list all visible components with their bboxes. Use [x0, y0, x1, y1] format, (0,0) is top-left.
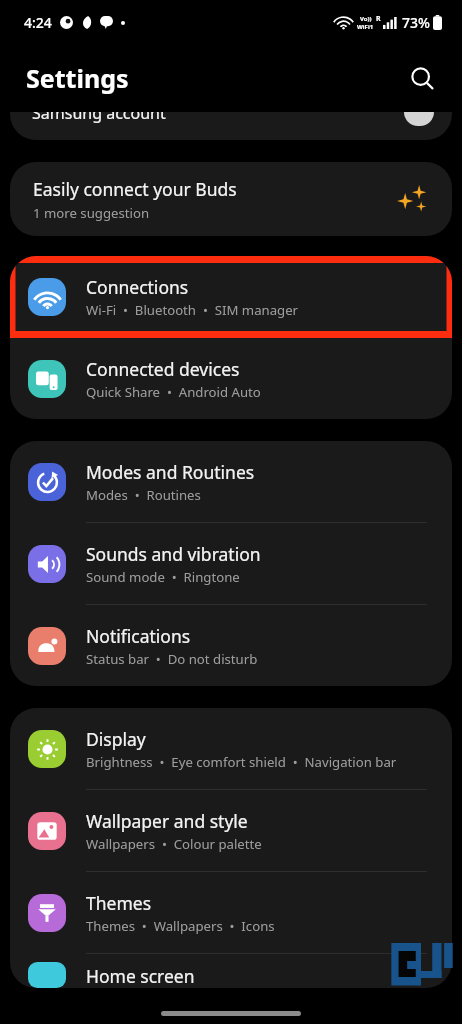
staticText: 1 more suggestion: [33, 204, 150, 222]
button[interactable]: Connected devices: [10, 338, 452, 419]
staticText: Easily connect your Buds: [33, 177, 237, 201]
button[interactable]: Display: [10, 708, 452, 789]
staticText: Quick Share • Android Auto: [86, 383, 261, 401]
staticText: Connections: [86, 275, 189, 299]
button[interactable]: Wallpaper and style: [10, 790, 452, 871]
staticText: Wallpapers • Colour palette: [86, 835, 262, 853]
staticText: Themes: [86, 891, 152, 915]
staticText: 4:24: [24, 13, 52, 32]
staticText: Status bar • Do not disturb: [86, 650, 258, 668]
staticText: Notifications: [86, 624, 191, 648]
button[interactable]: Connections: [10, 256, 452, 338]
button[interactable]: Notifications: [10, 605, 452, 686]
staticText: Themes • Wallpapers • Icons: [86, 917, 275, 935]
staticText: Vo)): [360, 15, 372, 23]
staticText: Modes and Routines: [86, 460, 255, 484]
button[interactable]: Home screen: [10, 954, 452, 988]
staticText: Samsung account: [32, 112, 166, 124]
staticText: Connected devices: [86, 357, 240, 381]
button[interactable]: Easily connect your Buds: [10, 162, 452, 236]
staticText: R: [376, 14, 381, 24]
button[interactable]: Samsung account: [10, 112, 452, 140]
staticText: Brightness • Eye comfort shield • Naviga…: [86, 753, 397, 771]
staticText: Home screen: [86, 964, 195, 988]
staticText: Wi-Fi • Bluetooth • SIM manager: [86, 301, 299, 319]
staticText: 73%: [402, 13, 430, 32]
button[interactable]: Themes: [10, 872, 452, 953]
staticText: Settings: [26, 61, 129, 95]
staticText: Sounds and vibration: [86, 542, 261, 566]
staticText: Display: [86, 727, 146, 751]
staticText: Wallpaper and style: [86, 809, 248, 833]
staticText: Sound mode • Ringtone: [86, 568, 240, 586]
staticText: Modes • Routines: [86, 486, 201, 504]
button[interactable]: Sounds and vibration: [10, 523, 452, 604]
button[interactable]: Search: [400, 56, 444, 100]
staticText: WiFi1: [357, 23, 374, 31]
button[interactable]: Modes and Routines: [10, 441, 452, 522]
